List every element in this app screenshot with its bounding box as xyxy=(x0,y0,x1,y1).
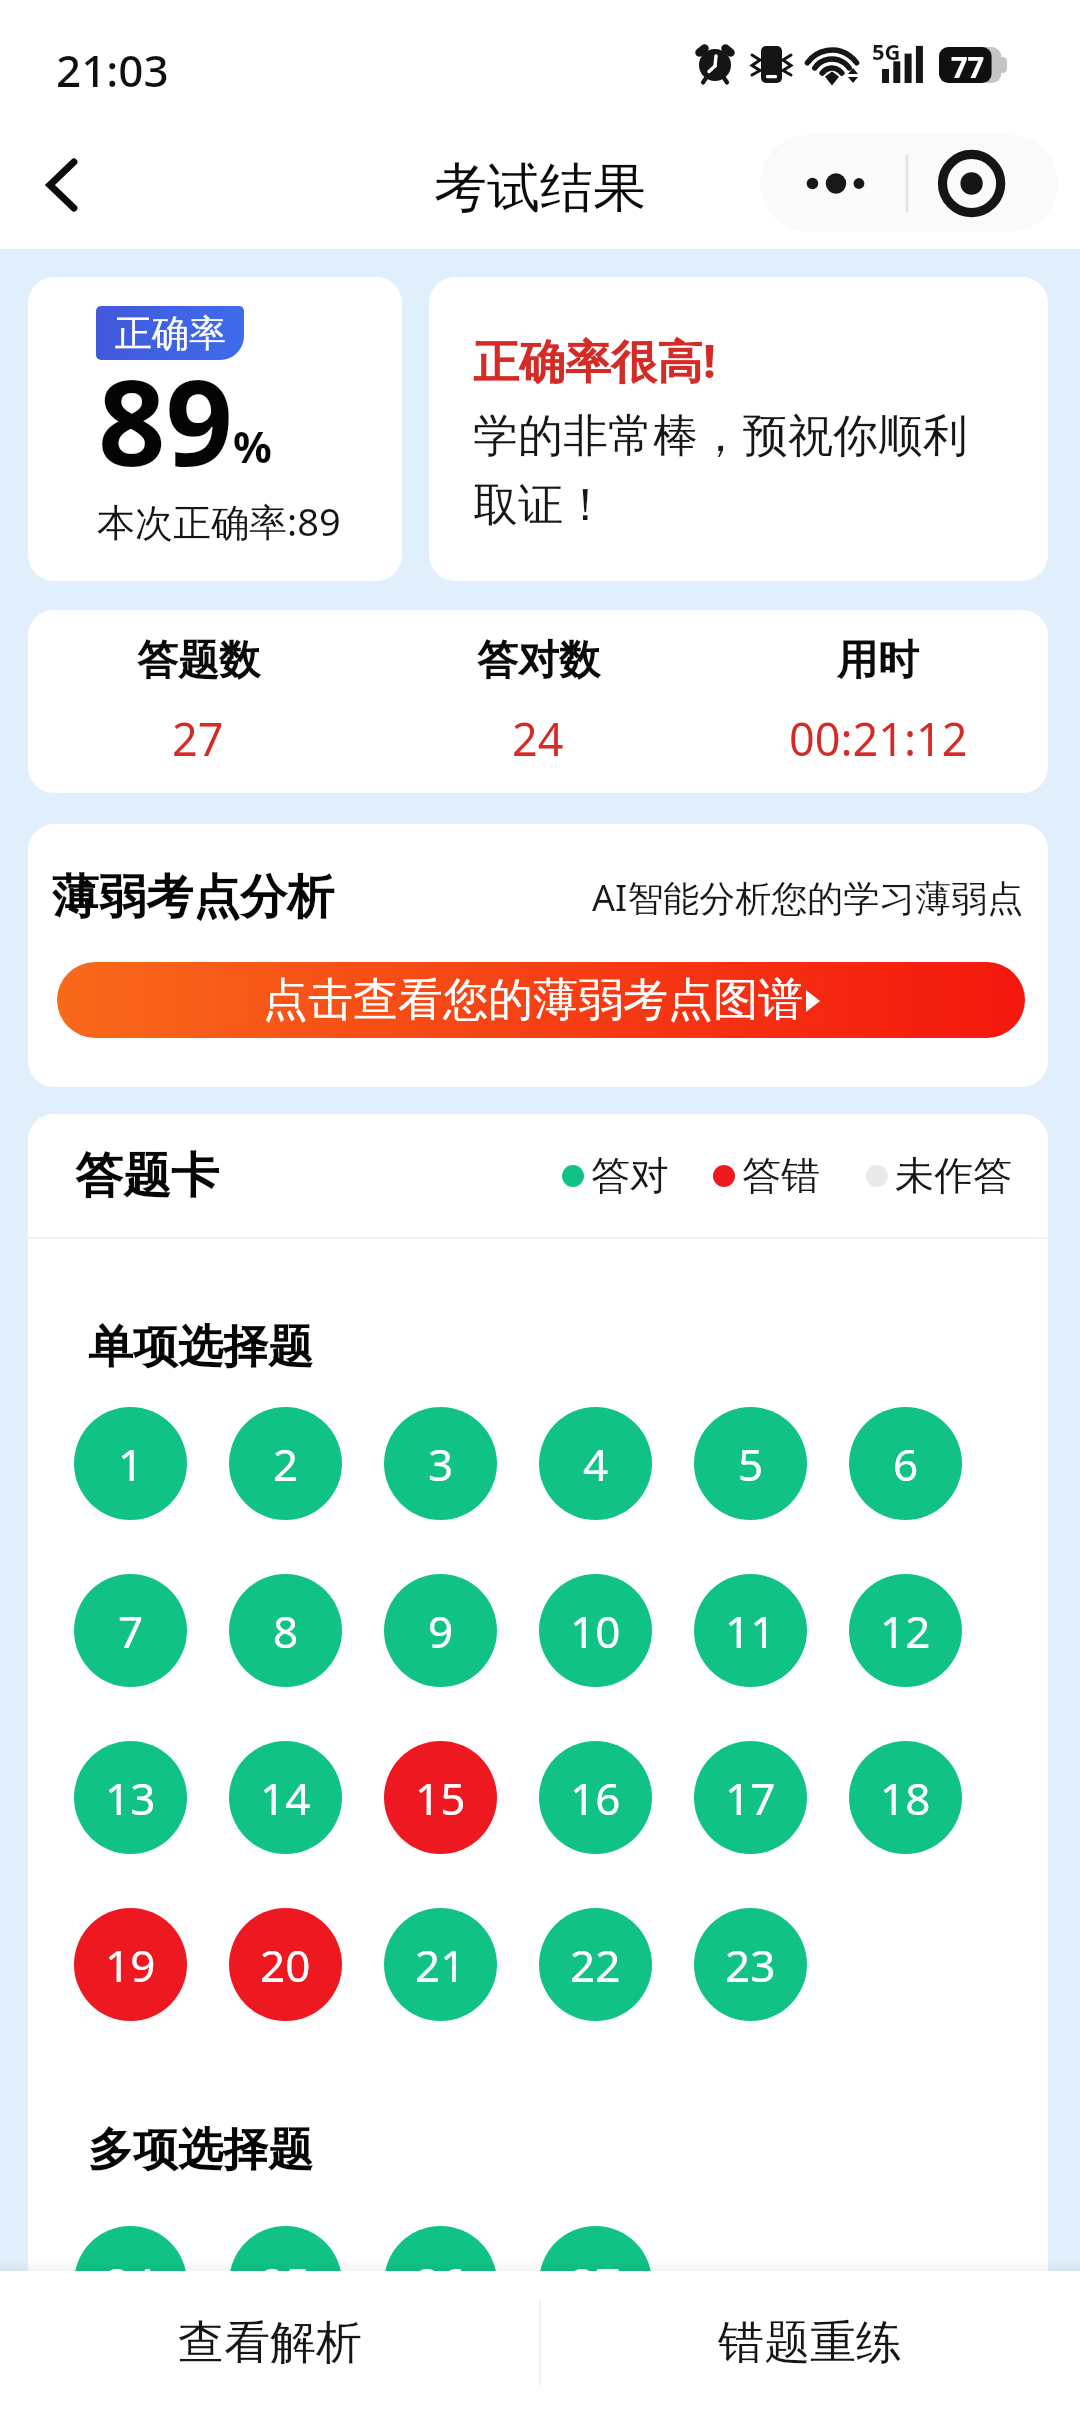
staticText: 5 xyxy=(738,1434,764,1494)
staticText: 20 xyxy=(260,1935,311,1995)
staticText: 21 xyxy=(415,1935,466,1995)
staticText: 21:03 xyxy=(56,40,169,100)
staticText: 24 xyxy=(105,2253,156,2313)
button[interactable]: 15 xyxy=(384,1741,497,1854)
staticText: 26 xyxy=(415,2253,466,2313)
staticText: 9 xyxy=(428,1601,454,1661)
staticText: 17 xyxy=(725,1768,776,1828)
button[interactable]: 14 xyxy=(229,1741,342,1854)
staticText: 23 xyxy=(725,1935,776,1995)
staticText: 2 xyxy=(273,1434,299,1494)
button[interactable]: 正确率 xyxy=(28,277,402,581)
button[interactable]: 7 xyxy=(74,1574,187,1687)
staticText: 11 xyxy=(725,1601,776,1661)
button[interactable]: Back xyxy=(13,140,103,230)
button[interactable]: 26 xyxy=(384,2226,497,2339)
staticText: 3 xyxy=(428,1434,454,1494)
staticText: 00:21:12 xyxy=(789,708,968,769)
staticText: 16 xyxy=(570,1768,621,1828)
staticText: 8 xyxy=(273,1601,299,1661)
staticText: 22 xyxy=(570,1935,621,1995)
staticText: 7 xyxy=(118,1601,144,1661)
staticText: 4 xyxy=(583,1434,609,1494)
button[interactable]: 2 xyxy=(229,1407,342,1520)
staticText: 正确率 xyxy=(115,310,226,357)
button[interactable]: 12 xyxy=(849,1574,962,1687)
button[interactable]: 1 xyxy=(74,1407,187,1520)
button[interactable]: 6 xyxy=(849,1407,962,1520)
button[interactable]: 21 xyxy=(384,1908,497,2021)
staticText: 77 xyxy=(951,47,985,83)
button[interactable]: 17 xyxy=(694,1741,807,1854)
button[interactable]: 错题重练 xyxy=(540,2271,1080,2414)
button[interactable]: 11 xyxy=(694,1574,807,1687)
button[interactable]: 25 xyxy=(229,2226,342,2339)
staticText: 18 xyxy=(880,1768,931,1828)
staticText: 24 xyxy=(512,708,564,769)
button[interactable]: 10 xyxy=(539,1574,652,1687)
staticText: 多项选择题 xyxy=(88,2122,313,2179)
staticText: 点击查看您的薄弱考点图谱 xyxy=(263,972,803,1029)
button[interactable]: 16 xyxy=(539,1741,652,1854)
staticText: 学的非常棒，预祝你顺利 取证！ xyxy=(473,408,968,533)
staticText: 答题数 xyxy=(137,635,260,687)
staticText: 19 xyxy=(105,1935,156,1995)
staticText: 14 xyxy=(260,1768,311,1828)
button[interactable]: 点击查看您的薄弱考点图谱 xyxy=(57,962,1025,1038)
staticText: 12 xyxy=(880,1601,931,1661)
button[interactable]: 19 xyxy=(74,1908,187,2021)
button[interactable]: 正确率很高! xyxy=(429,277,1048,581)
staticText: 考试结果 xyxy=(434,155,646,222)
staticText: 未作答 xyxy=(895,1151,1012,1200)
button[interactable]: 查看解析 xyxy=(0,2271,540,2414)
button[interactable]: 24 xyxy=(74,2226,187,2339)
button[interactable]: 3 xyxy=(384,1407,497,1520)
button[interactable]: 20 xyxy=(229,1908,342,2021)
button[interactable]: 23 xyxy=(694,1908,807,2021)
staticText: 1 xyxy=(118,1434,144,1494)
staticText: 本次正确率:89 xyxy=(97,495,341,547)
staticText: % xyxy=(233,417,272,476)
button[interactable]: 9 xyxy=(384,1574,497,1687)
staticText: 27 xyxy=(172,708,224,769)
staticText: 13 xyxy=(105,1768,156,1828)
button[interactable]: 5 xyxy=(694,1407,807,1520)
button[interactable]: 27 xyxy=(539,2226,652,2339)
staticText: 89 xyxy=(98,340,233,501)
staticText: 答题卡 xyxy=(75,1146,219,1206)
staticText: 10 xyxy=(570,1601,621,1661)
button[interactable]: 4 xyxy=(539,1407,652,1520)
staticText: 正确率很高! xyxy=(473,329,716,392)
button[interactable]: Mini program menu xyxy=(760,135,1058,232)
staticText: 答对数 xyxy=(477,635,600,687)
staticText: 用时 xyxy=(837,635,919,687)
staticText: 25 xyxy=(260,2253,311,2313)
button[interactable]: 8 xyxy=(229,1574,342,1687)
staticText: 6 xyxy=(893,1434,919,1494)
staticText: AI智能分析您的学习薄弱点 xyxy=(592,873,1024,922)
staticText: 5G xyxy=(872,36,901,66)
staticText: 单项选择题 xyxy=(88,1319,313,1376)
button[interactable]: 13 xyxy=(74,1741,187,1854)
staticText: 薄弱考点分析 xyxy=(52,868,334,927)
staticText: 27 xyxy=(570,2253,621,2313)
button[interactable]: 22 xyxy=(539,1908,652,2021)
staticText: 答错 xyxy=(742,1151,820,1200)
staticText: 答对 xyxy=(591,1151,669,1200)
staticText: 15 xyxy=(415,1768,466,1828)
staticText: 错题重练 xyxy=(718,2314,902,2372)
staticText: 查看解析 xyxy=(178,2314,362,2372)
button[interactable]: 18 xyxy=(849,1741,962,1854)
